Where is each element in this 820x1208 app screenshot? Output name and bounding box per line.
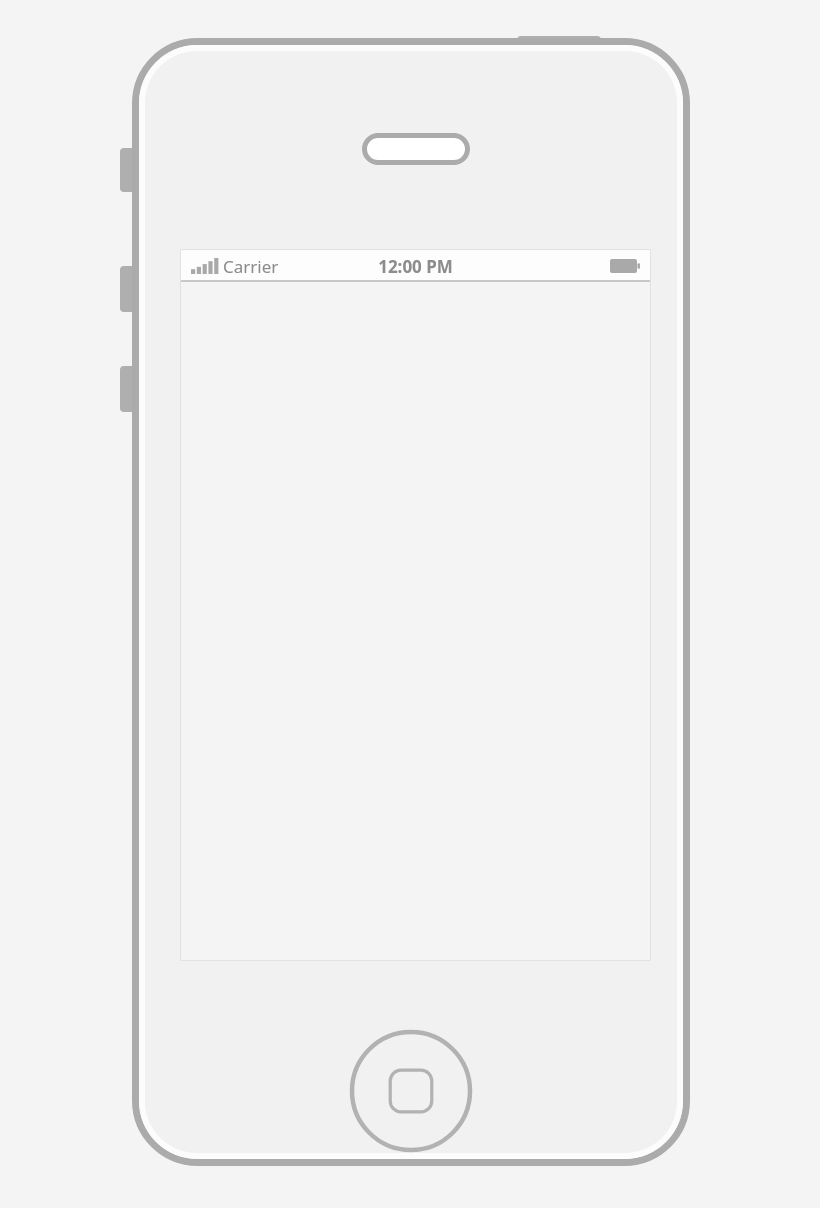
staticText: Carrier — [223, 255, 279, 278]
button[interactable]: Volume down — [120, 366, 134, 412]
button[interactable]: Volume up — [120, 266, 134, 312]
button[interactable]: Mute switch — [120, 148, 134, 192]
button[interactable]: Home — [348, 1028, 474, 1154]
staticText: 12:00 PM — [378, 255, 453, 278]
button[interactable]: Power — [517, 36, 601, 50]
